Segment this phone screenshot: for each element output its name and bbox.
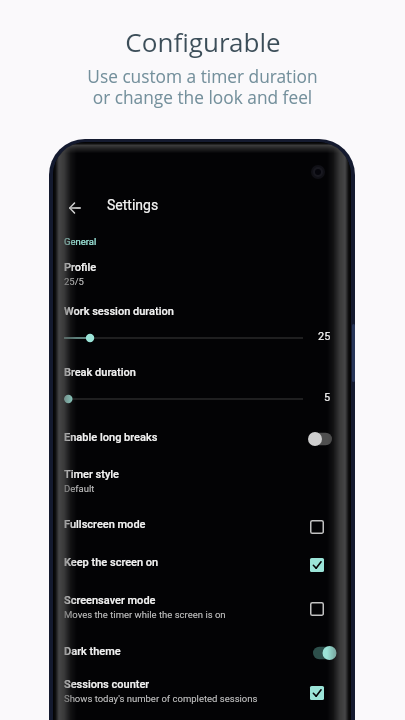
button[interactable]: Screensaver mode (53, 585, 351, 621)
staticText: Work session duration (64, 305, 174, 318)
staticText: Fullscreen mode (64, 518, 146, 531)
button[interactable]: Break duration (53, 358, 351, 406)
staticText: Timer style (64, 468, 119, 481)
button[interactable]: Keep the screen on (53, 547, 351, 577)
button[interactable]: Power button (352, 324, 355, 382)
staticText: Settings (107, 197, 159, 213)
button[interactable]: Enable long breaks (53, 422, 351, 452)
staticText: Default (64, 483, 95, 494)
button[interactable]: Back (61, 194, 89, 222)
staticText: Moves the timer while the screen is on (64, 609, 226, 620)
staticText: Enable long breaks (64, 431, 158, 444)
staticText: General (64, 236, 97, 247)
button[interactable]: Work session duration (53, 297, 351, 345)
button[interactable]: Dark theme (53, 636, 351, 666)
staticText: Sessions counter (64, 678, 150, 691)
staticText: Dark theme (64, 645, 121, 658)
staticText: 25/5 (64, 276, 84, 287)
staticText: Shows today's number of completed sessio… (64, 693, 258, 704)
button[interactable]: Sessions counter (53, 669, 351, 705)
staticText: Break duration (64, 366, 136, 379)
staticText: Screensaver mode (64, 594, 156, 607)
staticText: Profile (64, 261, 97, 274)
staticText: Configurable (125, 24, 281, 59)
button[interactable]: Profile (53, 253, 351, 287)
button[interactable]: Timer style (53, 460, 351, 494)
staticText: Use custom a timer duration or change th… (87, 65, 318, 110)
button[interactable]: Fullscreen mode (53, 509, 351, 539)
staticText: Keep the screen on (64, 556, 159, 569)
staticText: 5 (324, 391, 331, 404)
staticText: 25 (318, 330, 331, 343)
